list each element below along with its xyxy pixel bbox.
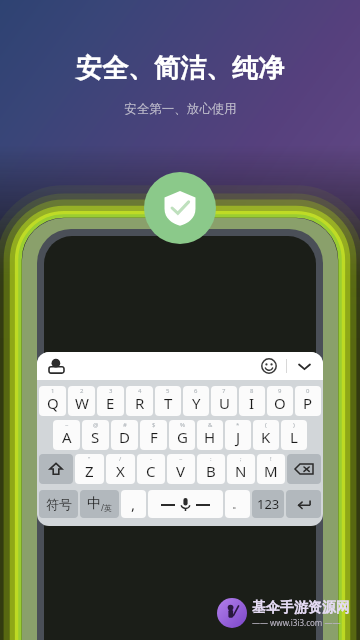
staticText: ( <box>265 421 267 429</box>
staticText: 安全第一、放心使用 <box>124 101 237 117</box>
button[interactable]: 9 <box>267 386 293 416</box>
staticText: A <box>62 427 72 447</box>
button[interactable]: 符号 <box>39 490 78 518</box>
staticText: S <box>91 427 100 447</box>
button[interactable]: Enter <box>286 490 321 518</box>
button[interactable]: ; <box>227 454 255 484</box>
button[interactable]: 6 <box>183 386 209 416</box>
staticText: 5 <box>166 387 170 395</box>
staticText: D <box>119 427 130 447</box>
button[interactable]: 7 <box>211 386 237 416</box>
staticText: I <box>249 393 255 413</box>
staticText: W <box>75 393 89 413</box>
button[interactable]: ) <box>281 420 307 450</box>
button[interactable]: 2 <box>68 386 95 416</box>
staticText: & <box>208 421 213 429</box>
staticText: R <box>135 393 145 413</box>
button[interactable]: ! <box>257 454 285 484</box>
staticText: 3 <box>109 387 113 395</box>
button[interactable]: - <box>137 454 165 484</box>
staticText: 符号 <box>46 496 72 512</box>
staticText: T <box>164 393 173 413</box>
staticText: 安全、简洁、纯净 <box>76 52 284 85</box>
staticText: G <box>177 427 188 447</box>
button[interactable]: % <box>169 420 195 450</box>
staticText: ) <box>293 421 295 429</box>
button[interactable]: Backspace <box>287 454 321 484</box>
staticText: E <box>106 393 115 413</box>
staticText: 123 <box>257 495 280 513</box>
staticText: 6 <box>194 387 198 395</box>
staticText: 9 <box>278 387 282 395</box>
staticText: /英 <box>101 502 112 513</box>
button[interactable]: Switch input method <box>45 355 67 377</box>
button[interactable]: , <box>121 490 146 518</box>
button[interactable]: 。 <box>225 490 250 518</box>
staticText: # <box>123 421 127 429</box>
staticText: / <box>119 455 122 463</box>
staticText: C <box>146 461 156 481</box>
button[interactable]: 1 <box>39 386 66 416</box>
button[interactable]: " <box>75 454 104 484</box>
staticText: —— www.i3i3.com —— <box>252 617 341 628</box>
staticText: 4 <box>138 387 142 395</box>
staticText: F <box>150 427 158 447</box>
button[interactable]: @ <box>82 420 109 450</box>
staticText: Q <box>47 393 59 413</box>
staticText: ~ <box>65 421 69 429</box>
staticText: $ <box>152 421 156 429</box>
staticText: ~ <box>179 455 183 463</box>
button[interactable]: ( <box>253 420 279 450</box>
staticText: 0 <box>306 387 310 395</box>
button[interactable]: 0 <box>295 386 321 416</box>
staticText: 7 <box>222 387 226 395</box>
button[interactable]: * <box>225 420 251 450</box>
button[interactable]: 123 <box>252 490 284 518</box>
staticText: 中 <box>87 495 101 513</box>
staticText: 2 <box>80 387 84 395</box>
button[interactable]: $ <box>140 420 167 450</box>
button[interactable]: 8 <box>239 386 265 416</box>
staticText: K <box>261 427 271 447</box>
button[interactable]: Shift <box>39 454 73 484</box>
button[interactable]: ~ <box>167 454 195 484</box>
staticText: 1 <box>51 387 55 395</box>
staticText: X <box>116 461 125 481</box>
button[interactable]: 5 <box>155 386 181 416</box>
staticText: Y <box>192 393 201 413</box>
staticText: ; <box>240 455 242 463</box>
staticText: % <box>180 421 185 429</box>
staticText: Z <box>85 461 94 481</box>
button[interactable]: 3 <box>97 386 124 416</box>
button[interactable]: 4 <box>126 386 153 416</box>
button[interactable]: # <box>111 420 138 450</box>
button[interactable]: / <box>106 454 135 484</box>
staticText: 基伞手游资源网 <box>252 599 350 617</box>
staticText: * <box>236 421 240 429</box>
staticText: 。 <box>232 497 243 511</box>
button[interactable]: 中 <box>80 490 119 518</box>
staticText: P <box>303 393 313 413</box>
staticText: J <box>236 427 241 447</box>
staticText: N <box>235 461 247 481</box>
staticText: H <box>204 427 216 447</box>
staticText: O <box>274 393 286 413</box>
button[interactable]: : <box>197 454 225 484</box>
button[interactable]: & <box>197 420 223 450</box>
staticText: " <box>88 455 91 463</box>
staticText: M <box>264 461 278 481</box>
staticText: : <box>210 455 212 463</box>
staticText: , <box>131 494 136 514</box>
staticText: 8 <box>250 387 254 395</box>
staticText: @ <box>93 421 99 429</box>
staticText: ! <box>270 455 272 463</box>
button[interactable]: Emoji <box>258 355 280 377</box>
button[interactable]: Space, voice input <box>148 490 223 518</box>
button[interactable]: Security shield <box>144 172 216 244</box>
staticText: V <box>176 461 186 481</box>
staticText: U <box>219 393 230 413</box>
staticText: B <box>206 461 216 481</box>
button[interactable]: ~ <box>53 420 80 450</box>
staticText: L <box>290 427 298 447</box>
button[interactable]: Hide keyboard <box>293 355 315 377</box>
